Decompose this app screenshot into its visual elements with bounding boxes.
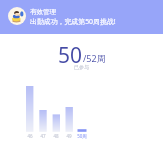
staticText: 46: [21, 133, 39, 139]
staticText: 50周: [73, 133, 91, 139]
staticText: 50: [58, 41, 83, 70]
staticText: 47: [34, 133, 52, 139]
staticText: /52周: [83, 52, 106, 64]
button[interactable]: 有效管理: [0, 0, 163, 34]
staticText: 49: [60, 133, 78, 139]
staticText: 已参与: [0, 64, 163, 70]
staticText: 有效管理: [30, 8, 56, 16]
staticText: 出勤成功，完成第50周挑战!: [30, 17, 116, 26]
staticText: 48: [47, 133, 65, 139]
